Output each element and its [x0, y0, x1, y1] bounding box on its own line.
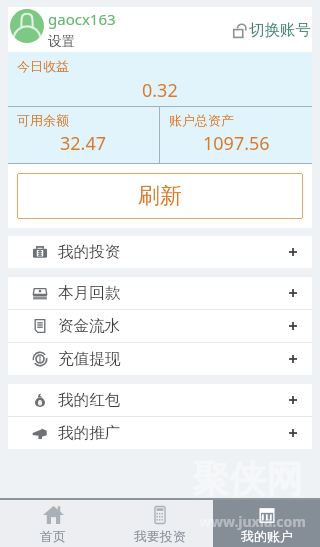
staticText: 刷新 [138, 182, 182, 210]
staticText: 聚侠网 [192, 456, 303, 503]
staticText: 32.47 [60, 131, 107, 156]
button[interactable]: 资金流水 [8, 310, 312, 342]
button[interactable]: 刷新 [17, 173, 303, 219]
button[interactable]: 切换账号 [233, 20, 312, 40]
staticText: www.juxia.com [199, 512, 306, 531]
staticText: 首页 [40, 528, 66, 544]
staticText: 可用余额 [17, 112, 69, 128]
button[interactable]: 我要投资 [106, 500, 213, 547]
button[interactable]: 我的推广 [8, 417, 312, 449]
button[interactable]: 首页 [0, 500, 106, 547]
staticText: 1097.56 [203, 131, 270, 156]
staticText: 我的投资 [58, 242, 121, 262]
button[interactable]: 我的红包 [8, 384, 312, 416]
button[interactable]: 我的账户 [213, 500, 320, 547]
staticText: 账户总资产 [169, 112, 234, 128]
other: Profile avatar [10, 9, 44, 43]
staticText: 我的推广 [58, 423, 121, 443]
staticText: 本月回款 [58, 283, 121, 303]
button[interactable]: 本月回款 [8, 277, 312, 309]
button[interactable]: 我的投资 [8, 236, 312, 268]
staticText: 充值提现 [58, 349, 121, 369]
staticText: gaocx163 [48, 9, 116, 29]
staticText: 资金流水 [58, 316, 121, 336]
button[interactable]: 设置 [46, 31, 77, 52]
staticText: 0.32 [142, 78, 178, 103]
staticText: 我的账户 [241, 528, 293, 544]
staticText: 今日收益 [17, 58, 69, 74]
staticText: 设置 [48, 33, 75, 50]
staticText: 切换账号 [249, 20, 311, 40]
staticText: 我的红包 [58, 390, 121, 410]
button[interactable]: 充值提现 [8, 343, 312, 375]
staticText: 我要投资 [134, 528, 186, 544]
